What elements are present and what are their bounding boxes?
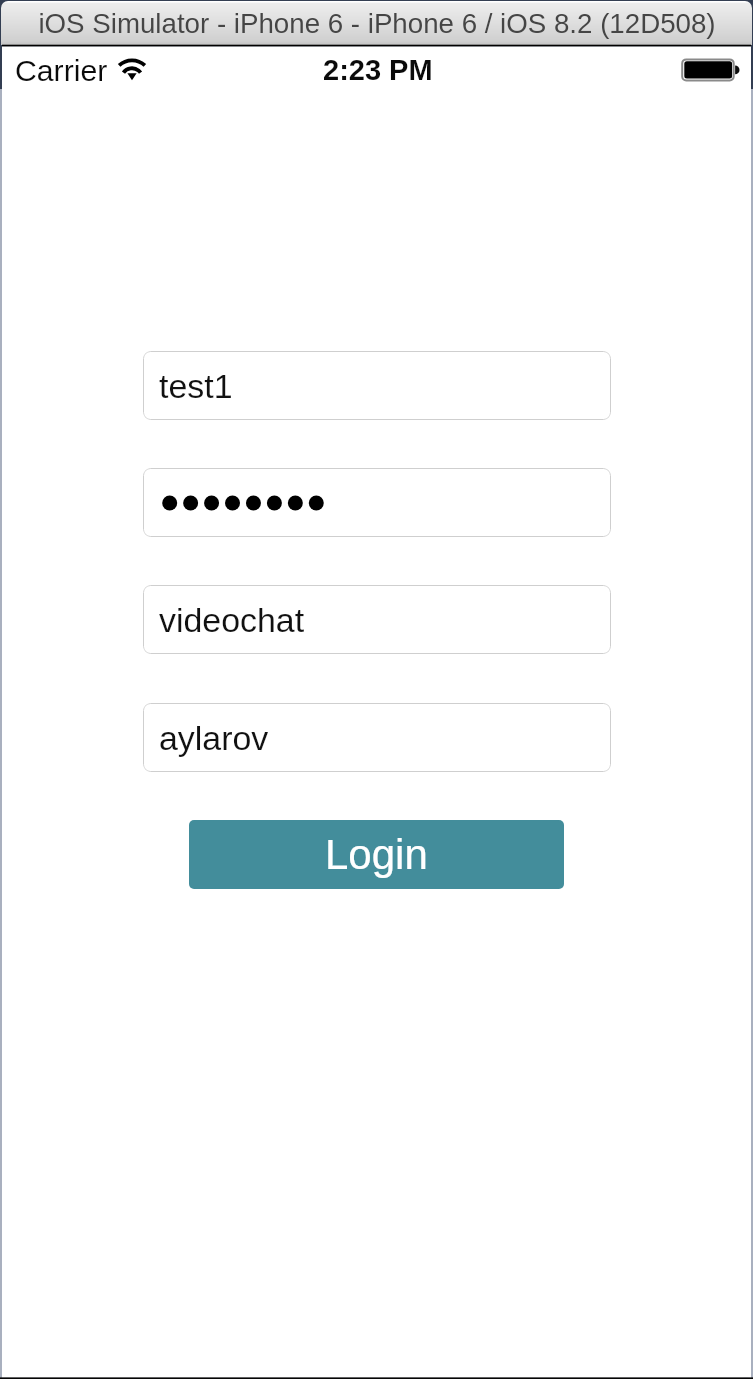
staticText: Login — [325, 831, 428, 878]
button[interactable]: videochat — [143, 585, 611, 654]
staticText: 2:23 PM — [323, 54, 433, 86]
other: Wi-Fi — [112, 54, 152, 84]
button[interactable]: aylarov — [143, 703, 611, 772]
staticText: test1 — [159, 367, 233, 405]
staticText: Carrier — [15, 54, 108, 88]
staticText: videochat — [159, 601, 305, 639]
button[interactable]: test1 — [143, 351, 611, 420]
other: Battery — [680, 57, 742, 85]
staticText: aylarov — [159, 719, 269, 757]
staticText: iOS Simulator - iPhone 6 - iPhone 6 / iO… — [38, 8, 716, 39]
button[interactable] — [143, 468, 611, 537]
button[interactable]: Login — [189, 820, 564, 889]
